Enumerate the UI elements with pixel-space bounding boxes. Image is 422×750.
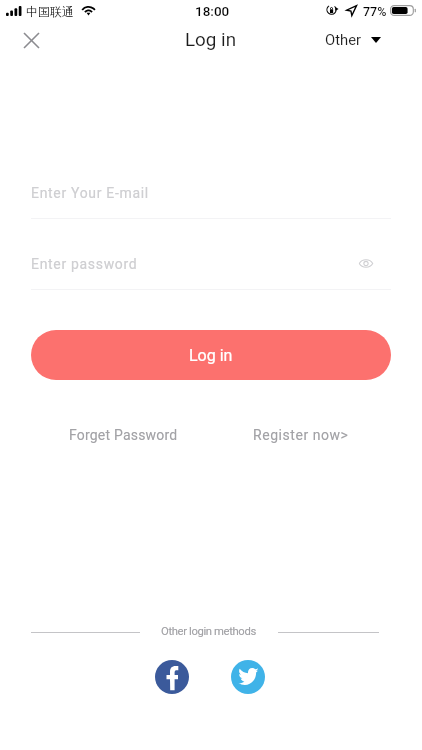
button[interactable]: Sign in with Twitter xyxy=(231,660,265,694)
staticText: 77% xyxy=(363,4,387,19)
button[interactable]: Enter Your E-mail xyxy=(0,178,422,219)
button[interactable]: Forget Password xyxy=(61,421,186,449)
button[interactable]: Show password xyxy=(352,250,379,277)
button[interactable]: Register now> xyxy=(245,421,357,449)
staticText: 中国联通 xyxy=(26,4,74,19)
button[interactable]: Other xyxy=(317,26,389,53)
staticText: Register now> xyxy=(253,427,349,443)
staticText: Other xyxy=(325,31,362,48)
staticText: 18:00 xyxy=(195,3,230,19)
button[interactable]: Log in xyxy=(31,330,391,380)
staticText: Forget Password xyxy=(69,427,178,443)
staticText: Enter Your E-mail xyxy=(31,185,149,201)
staticText: Enter password xyxy=(31,256,138,272)
staticText: Log in xyxy=(185,29,237,51)
button[interactable]: Close xyxy=(8,17,54,63)
staticText: Other login methods xyxy=(161,625,256,638)
button[interactable]: Enter password xyxy=(0,249,422,290)
staticText: Log in xyxy=(189,346,233,365)
button[interactable]: Sign in with Facebook xyxy=(155,660,189,694)
